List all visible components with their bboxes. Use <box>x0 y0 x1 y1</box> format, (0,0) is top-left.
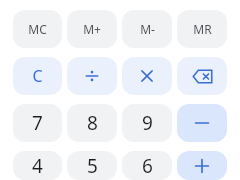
staticText: 4 <box>32 153 43 179</box>
button[interactable]: 7 <box>13 104 62 142</box>
button[interactable]: 6 <box>122 151 172 180</box>
staticText: 5 <box>87 153 98 179</box>
button[interactable]: M- <box>122 10 172 48</box>
staticText: 9 <box>142 110 153 136</box>
button[interactable]: Divide <box>67 57 117 95</box>
button[interactable]: 5 <box>67 151 117 180</box>
staticText: M+ <box>83 21 101 37</box>
button[interactable]: Multiply <box>122 57 172 95</box>
button[interactable]: Backspace <box>177 57 227 95</box>
button[interactable]: C <box>13 57 62 95</box>
button[interactable]: M+ <box>67 10 117 48</box>
button[interactable]: 9 <box>122 104 172 142</box>
staticText: 6 <box>142 153 153 179</box>
button[interactable]: 8 <box>67 104 117 142</box>
staticText: C <box>32 65 43 87</box>
button[interactable]: MR <box>177 10 227 48</box>
staticText: M- <box>140 21 155 37</box>
staticText: MR <box>193 21 212 37</box>
button[interactable]: MC <box>13 10 62 48</box>
staticText: MC <box>28 21 47 37</box>
button[interactable]: Plus <box>177 151 227 180</box>
staticText: 7 <box>32 110 43 136</box>
staticText: 8 <box>87 110 98 136</box>
button[interactable]: 4 <box>13 151 62 180</box>
button[interactable]: Minus <box>177 104 227 142</box>
